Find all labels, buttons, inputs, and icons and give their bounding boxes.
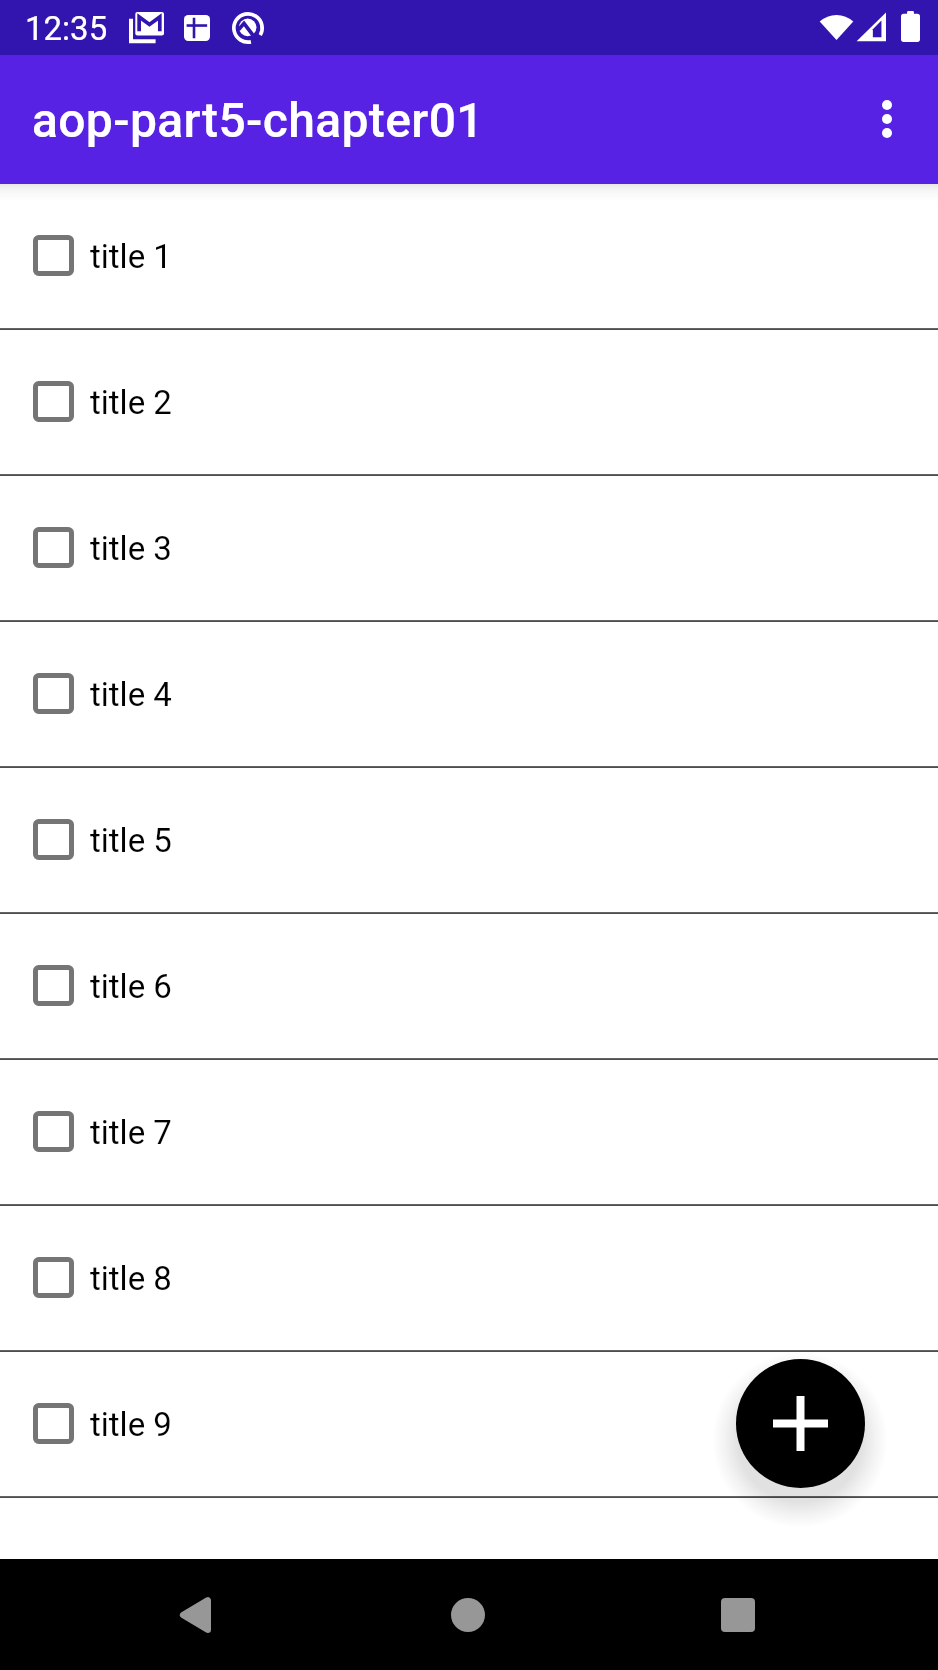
button[interactable]: title 1 xyxy=(0,184,938,329)
button[interactable]: More options xyxy=(841,73,933,165)
button[interactable]: Back xyxy=(149,1570,239,1660)
button[interactable]: title 4 xyxy=(0,622,938,767)
button[interactable]: title 8 xyxy=(0,1206,938,1351)
button[interactable]: title 5 xyxy=(0,768,938,913)
staticText: title 1 xyxy=(90,237,172,276)
staticText: title 8 xyxy=(90,1259,172,1298)
button[interactable]: Recents xyxy=(693,1570,783,1660)
button[interactable]: Home xyxy=(423,1570,513,1660)
staticText: title 5 xyxy=(90,821,172,860)
staticText: title 6 xyxy=(90,967,172,1006)
button[interactable]: Add xyxy=(736,1359,865,1488)
staticText: title 3 xyxy=(90,529,172,568)
staticText: 12:35 xyxy=(25,9,108,48)
button[interactable]: title 9 xyxy=(0,1352,938,1497)
button[interactable]: title 6 xyxy=(0,914,938,1059)
staticText: title 9 xyxy=(90,1405,172,1444)
button[interactable]: title 2 xyxy=(0,330,938,475)
staticText: title 7 xyxy=(90,1113,172,1152)
button[interactable]: title 3 xyxy=(0,476,938,621)
staticText: title 2 xyxy=(90,383,172,422)
button[interactable]: title 7 xyxy=(0,1060,938,1205)
staticText: aop-part5-chapter01 xyxy=(32,92,484,148)
staticText: title 4 xyxy=(90,675,172,714)
